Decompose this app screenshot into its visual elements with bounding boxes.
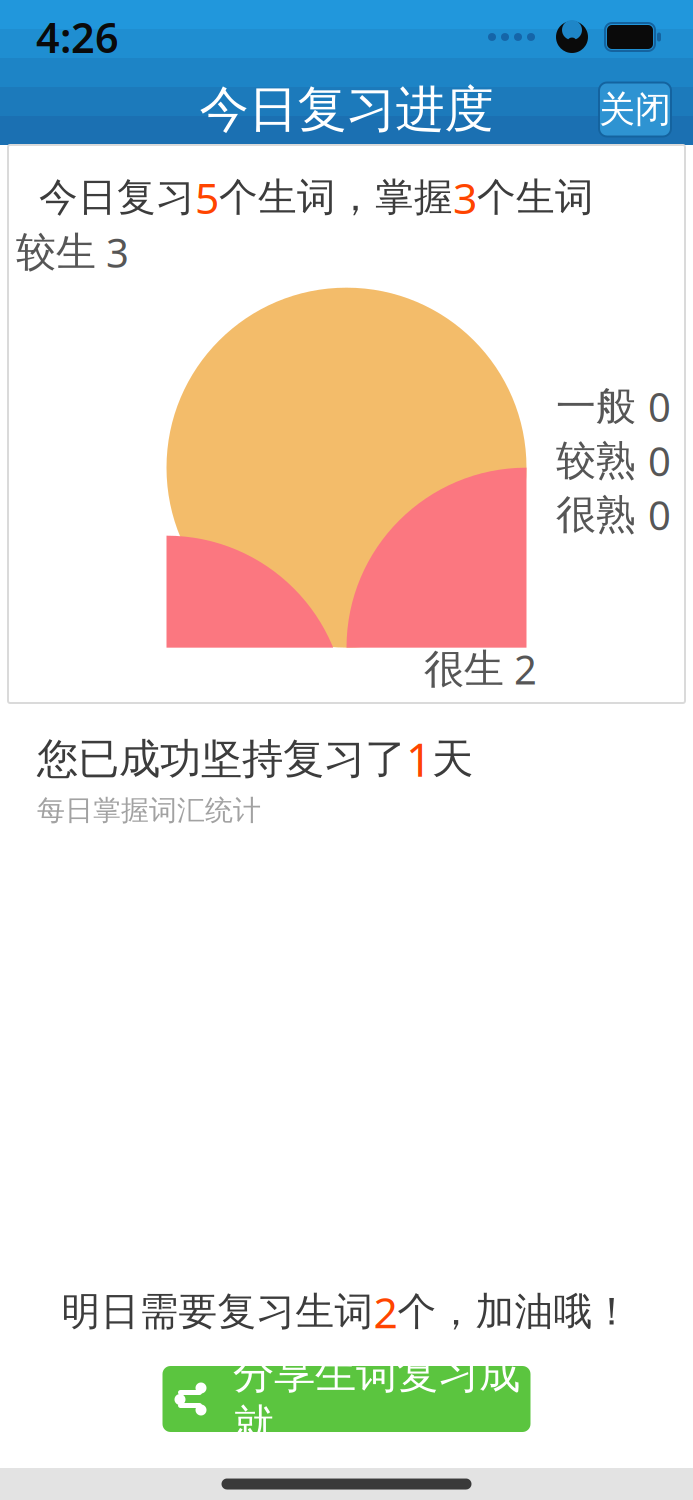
staticText: 5 [195,169,219,226]
staticText: 关闭 [599,87,671,132]
staticText: 0 [648,488,671,541]
staticText: 2 [373,1283,397,1340]
staticText: 4:26 [36,10,119,64]
staticText: 今日复习进度 [199,79,493,140]
staticText: 个，加油哦！ [397,1288,631,1335]
staticText: 较生 [16,228,96,277]
staticText: 天 [432,734,473,784]
staticText: 3 [106,226,129,279]
staticText: 您已成功坚持复习了 [37,734,406,784]
staticText: 很熟 [556,490,636,539]
staticText: 3 [453,169,477,226]
staticText: 明日需要复习生词 [61,1288,373,1335]
staticText: 0 [648,380,671,433]
staticText: 个生词 [477,174,594,221]
staticText: 一般 [556,382,636,431]
staticText: 1 [406,729,432,789]
staticText: 个生词，掌握 [219,174,453,221]
staticText: 0 [648,434,671,487]
staticText: 分享生词复习成就 [233,1348,520,1450]
button[interactable]: 分享生词复习成就 [162,1366,530,1432]
button[interactable]: 关闭 [599,82,671,136]
staticText: 今日复习 [39,174,195,221]
staticText: 很生 [424,644,504,694]
staticText: 2 [514,642,537,696]
staticText: 较熟 [556,436,636,485]
staticText: 每日掌握词汇统计 [37,793,261,828]
